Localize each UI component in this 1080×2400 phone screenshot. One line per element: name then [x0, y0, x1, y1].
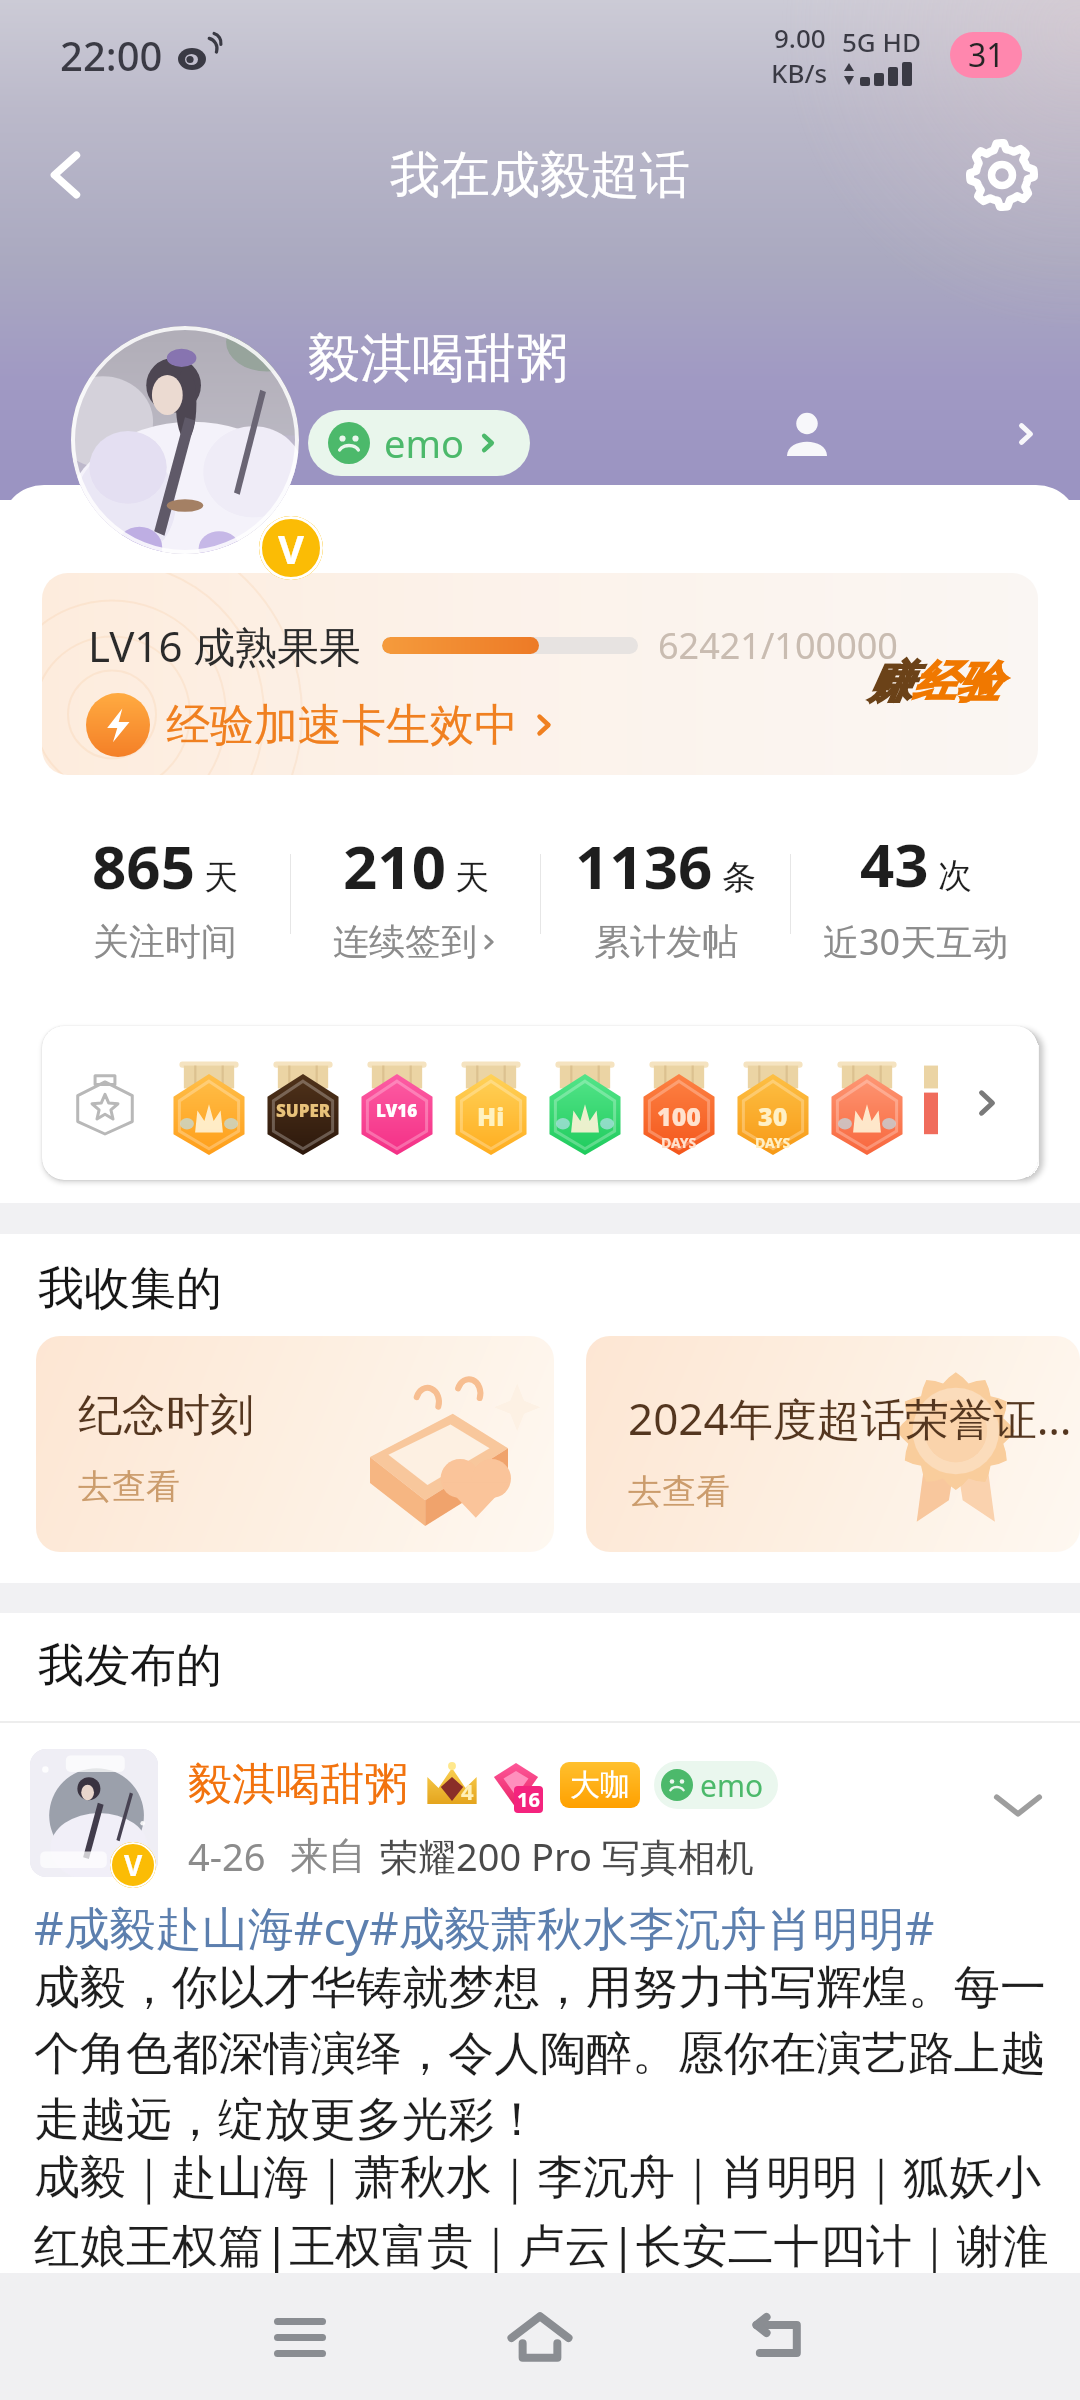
staticText: 关注时间	[93, 919, 237, 964]
staticText: emo	[700, 1765, 764, 1806]
staticText: 成毅，你以才华铸就梦想，用努力书写辉煌。每一个角色都深情演绎，令人陶醉。愿你在演…	[34, 1959, 1058, 2149]
staticText: 210	[343, 825, 446, 907]
staticText: 31	[968, 33, 1005, 77]
button[interactable]: More badges	[950, 1066, 1024, 1140]
button[interactable]: 210	[291, 816, 540, 972]
staticText: 4-26	[188, 1830, 266, 1882]
button[interactable]: Settings	[950, 123, 1054, 227]
button[interactable]: Expand post	[980, 1767, 1056, 1843]
staticText: 毅淇喝甜粥	[188, 1757, 408, 1812]
button[interactable]: Home	[480, 2277, 600, 2397]
staticText: 次	[938, 854, 972, 897]
button[interactable]: Recents	[240, 2277, 360, 2397]
button[interactable]: SUPER	[42, 1026, 1038, 1180]
staticText: 连续签到	[333, 919, 477, 964]
staticText: 43	[860, 823, 929, 905]
button[interactable]: emo	[308, 410, 530, 476]
staticText: emo	[384, 417, 464, 469]
button[interactable]: LV16 成熟果果	[42, 573, 1038, 775]
button[interactable]: 纪念时刻	[36, 1336, 554, 1552]
button[interactable]: 865	[40, 816, 290, 972]
button[interactable]: 1136	[541, 816, 790, 972]
button[interactable]: Members	[762, 390, 852, 480]
staticText: 1136	[575, 825, 713, 907]
button[interactable]: 2024年度超话荣誉证…	[586, 1336, 1080, 1552]
staticText: 赚	[868, 655, 912, 710]
staticText: LV16 成熟果果	[88, 617, 362, 674]
staticText: #成毅赴山海#cy#成毅萧秋水李沉舟肖明明#	[34, 1896, 935, 1959]
staticText: 天	[455, 856, 489, 899]
staticText: 62421/100000	[658, 621, 898, 670]
staticText: Hi	[477, 1099, 505, 1133]
staticText: 来自	[290, 1832, 366, 1880]
staticText: 865	[92, 825, 195, 907]
staticText: SUPER	[276, 1099, 331, 1122]
button[interactable]: Back	[720, 2277, 840, 2397]
staticText: V	[278, 521, 304, 575]
staticText: 4	[461, 1776, 474, 1806]
staticText: 5G HD	[842, 24, 921, 59]
staticText: LV16	[376, 1099, 418, 1122]
staticText: 大咖	[570, 1766, 630, 1804]
staticText: 我在成毅超话	[390, 144, 690, 207]
staticText: 毅淇喝甜粥	[308, 326, 568, 392]
button[interactable]	[71, 326, 299, 554]
staticText: 我收集的	[38, 1260, 222, 1318]
button[interactable]: 43	[791, 816, 1040, 972]
button[interactable]: Open members	[990, 398, 1062, 470]
staticText: 我发布的	[38, 1637, 222, 1695]
staticText: 近30天互动	[823, 917, 1009, 966]
staticText: 9.00	[774, 20, 826, 55]
staticText: KB/s	[771, 55, 828, 90]
staticText: 22:00	[60, 28, 163, 82]
staticText: 100	[657, 1099, 701, 1133]
button[interactable]	[30, 1749, 158, 1877]
staticText: 成毅｜赴山海｜萧秋水｜李沉舟｜肖明明｜狐妖小红娘王权篇|王权富贵｜卢云|长安二十…	[34, 2149, 1058, 2275]
staticText: 16	[517, 1786, 540, 1813]
button[interactable]: Back	[14, 123, 118, 227]
staticText: 30	[758, 1099, 788, 1133]
staticText: V	[124, 1846, 143, 1884]
staticText: DAYS	[661, 1133, 697, 1152]
staticText: 累计发帖	[594, 919, 738, 964]
staticText: 纪念时刻	[78, 1388, 254, 1443]
staticText: 2024年度超话荣誉证…	[628, 1388, 1072, 1448]
staticText: 天	[204, 856, 238, 899]
staticText: 去查看	[628, 1470, 730, 1513]
staticText: 荣耀200 Pro 写真相机	[380, 1830, 754, 1882]
staticText: 经验加速卡生效中	[166, 698, 518, 753]
staticText: DAYS	[755, 1133, 791, 1152]
staticText: 经验	[912, 655, 1000, 710]
staticText: 条	[722, 856, 756, 899]
staticText: 去查看	[78, 1465, 180, 1508]
